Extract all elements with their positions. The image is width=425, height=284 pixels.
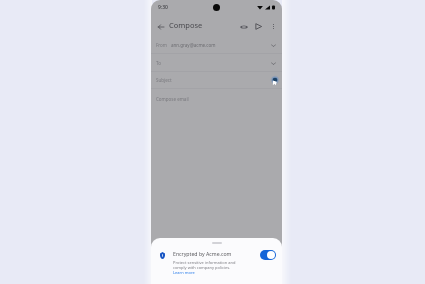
button[interactable]: Attach file (237, 20, 250, 33)
staticText: From (156, 42, 168, 48)
button[interactable]: Learn more (173, 270, 195, 275)
staticText: 9:30 (158, 4, 168, 11)
staticText: ann.gray@acme.com (171, 42, 216, 48)
button[interactable]: Send (252, 20, 265, 33)
button[interactable]: From (151, 36, 282, 54)
staticText: To (156, 60, 161, 66)
staticText: Compose email (156, 96, 189, 102)
button[interactable]: More options (267, 20, 280, 33)
staticText: Subject (156, 77, 172, 83)
button[interactable]: Subject (151, 71, 282, 89)
staticText: Compose (169, 20, 203, 30)
staticText: Protect sensitive information and comply… (173, 260, 247, 270)
button[interactable]: Back (154, 20, 167, 33)
button[interactable]: Encryption toggle (260, 250, 276, 260)
staticText: Encrypted by Acme.com (173, 250, 232, 257)
